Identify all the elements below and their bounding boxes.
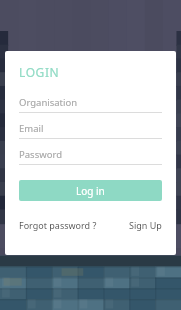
staticText: Organisation — [19, 96, 78, 109]
staticText: Sign Up — [129, 219, 162, 231]
button[interactable]: Log in — [19, 180, 162, 201]
staticText: Email — [19, 122, 44, 135]
staticText: Password — [19, 148, 62, 161]
staticText: LOGIN — [19, 64, 60, 80]
button[interactable]: Organisation — [19, 93, 162, 112]
button[interactable]: Password — [19, 145, 162, 164]
button[interactable]: Forgot password ? — [19, 216, 97, 234]
button[interactable]: Sign Up — [129, 216, 162, 234]
staticText: Forgot password ? — [19, 219, 97, 231]
staticText: Log in — [76, 184, 105, 198]
button[interactable]: Email — [19, 119, 162, 138]
